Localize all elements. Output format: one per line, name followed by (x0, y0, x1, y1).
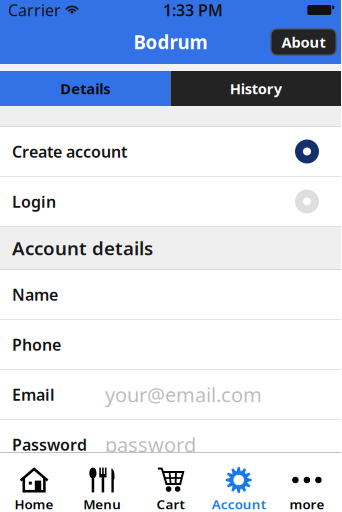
staticText: Login (12, 191, 56, 212)
staticText: Cart (156, 495, 184, 512)
staticText: 1:33 PM (163, 0, 223, 21)
button[interactable]: Home (0, 453, 68, 512)
staticText: confirm password (105, 481, 274, 508)
staticText: Carrier (8, 0, 61, 21)
staticText: Email (12, 384, 55, 405)
staticText: Password (12, 434, 87, 455)
staticText: About (281, 32, 325, 52)
button[interactable]: About (271, 29, 336, 55)
button[interactable]: Confirm (0, 470, 341, 512)
button[interactable]: Account (205, 453, 273, 512)
staticText: your@email.com (105, 381, 262, 408)
button[interactable]: Name (0, 270, 341, 320)
staticText: Confirm (12, 484, 74, 505)
button[interactable]: Email (0, 370, 341, 420)
staticText: Bodrum (133, 30, 207, 54)
button[interactable]: Login (0, 177, 341, 227)
staticText: Account (212, 495, 266, 512)
button[interactable]: Details (0, 71, 170, 106)
staticText: more (289, 495, 324, 512)
button[interactable]: History (170, 71, 341, 106)
staticText: Name (12, 284, 58, 305)
button[interactable]: Phone (0, 320, 341, 370)
staticText: Account details (12, 236, 153, 260)
button[interactable]: Create account (0, 127, 341, 177)
staticText: Details (60, 79, 110, 98)
button[interactable]: more (273, 453, 341, 512)
staticText: Menu (83, 495, 121, 512)
button[interactable]: Menu (68, 453, 136, 512)
staticText: Home (15, 495, 54, 512)
staticText: Create account (12, 141, 127, 162)
button[interactable]: Cart (136, 453, 205, 512)
staticText: password (105, 431, 196, 458)
staticText: History (230, 79, 282, 98)
button[interactable]: Password (0, 420, 341, 470)
staticText: Phone (12, 334, 61, 355)
